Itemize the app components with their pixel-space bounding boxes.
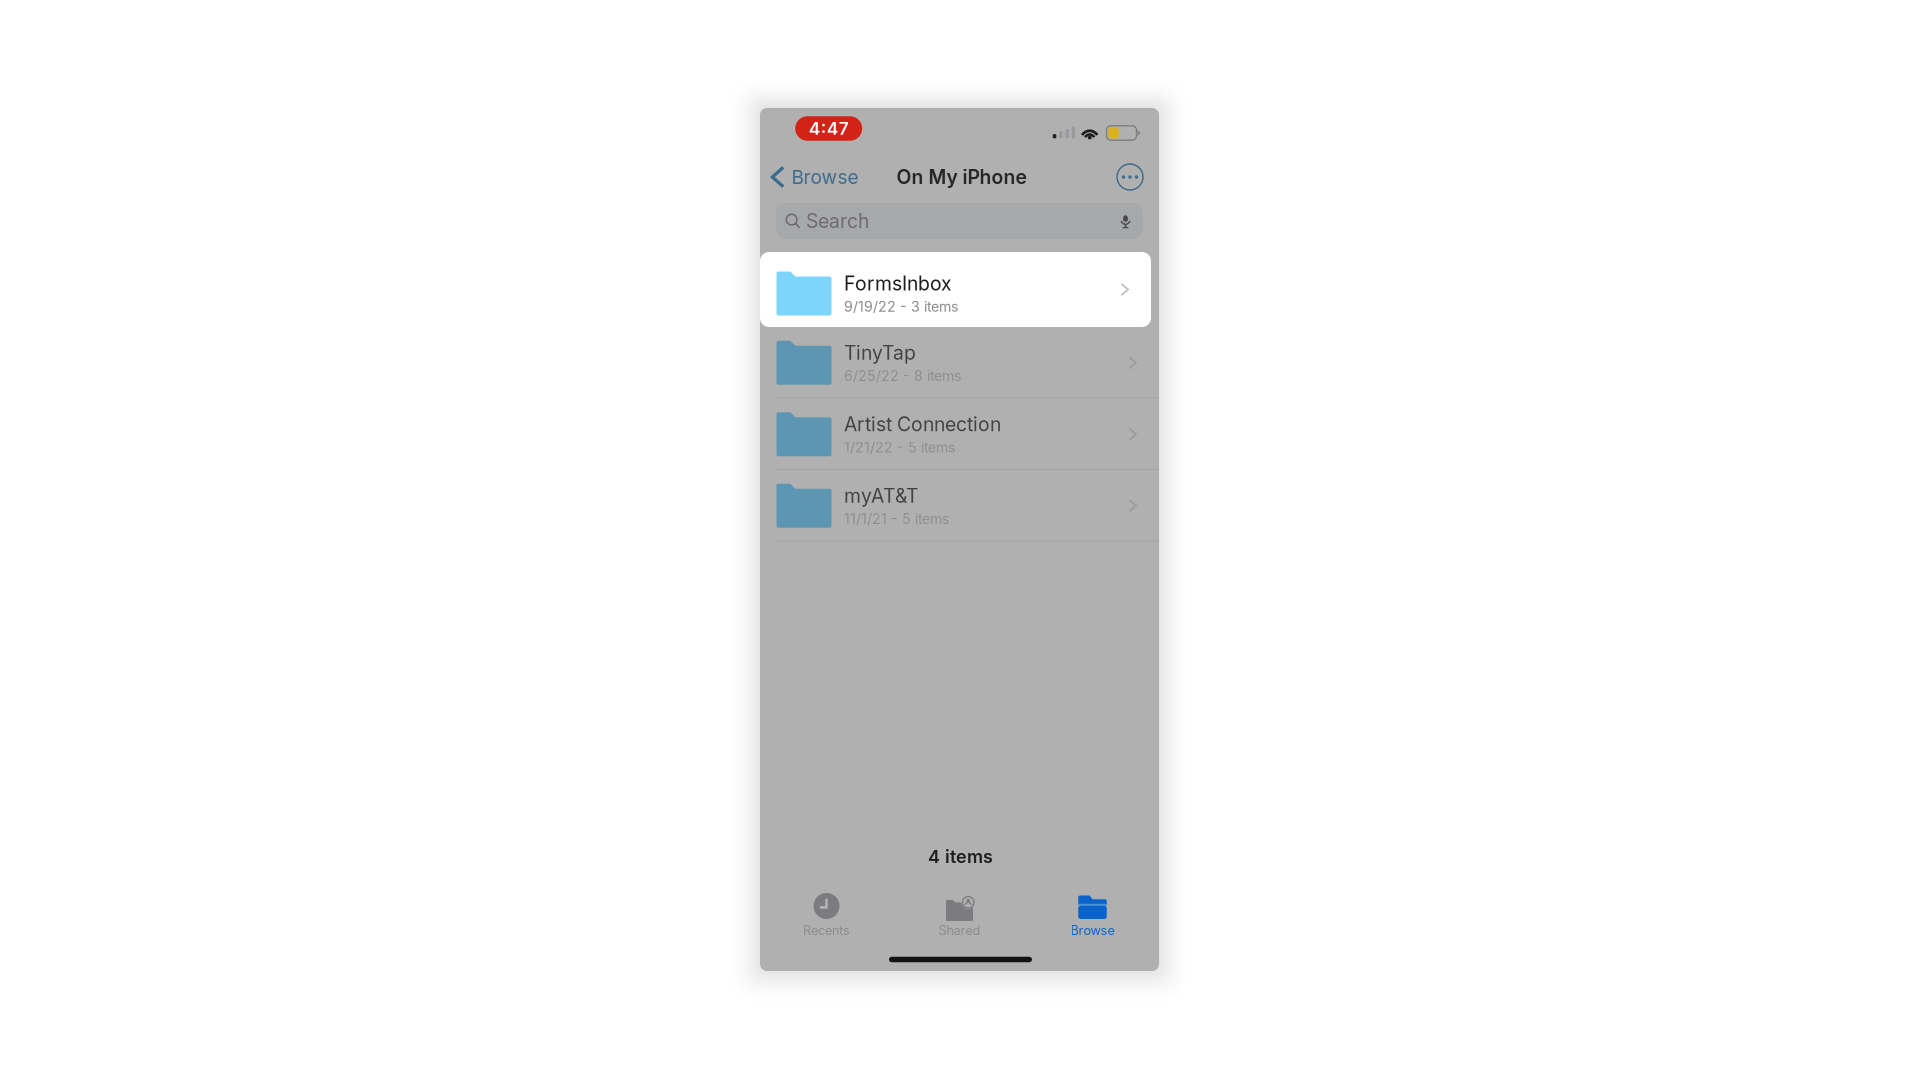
button[interactable]: myAT&T	[760, 470, 1159, 541]
staticText: Browse	[1070, 923, 1114, 938]
staticText: 4 items	[928, 846, 993, 867]
staticText: Artist Connection	[844, 413, 1001, 436]
staticText: 9/19/22 - 3 items	[844, 298, 958, 315]
staticText: 11/1/21 - 5 items	[844, 511, 949, 527]
button[interactable]: More options	[1108, 155, 1152, 199]
button[interactable]: Artist Connection	[760, 398, 1159, 470]
staticText: Recents	[803, 923, 850, 938]
staticText: FormsInbox	[844, 272, 952, 295]
staticText: 1/21/22 - 5 items	[844, 439, 955, 456]
button[interactable]: Browse	[1026, 890, 1159, 940]
staticText: TinyTap	[844, 341, 916, 364]
staticText: Shared	[938, 923, 980, 938]
button[interactable]: FormsInbox	[760, 252, 1151, 327]
staticText: myAT&T	[844, 484, 918, 507]
staticText: Browse	[792, 166, 859, 188]
button[interactable]: Browse	[761, 156, 867, 198]
button[interactable]: Recents	[760, 890, 893, 940]
staticText: 6/25/22 - 8 items	[844, 368, 961, 384]
staticText: On My iPhone	[896, 165, 1026, 188]
staticText: 4:47	[809, 118, 849, 139]
staticText: Search	[806, 209, 869, 232]
button[interactable]: TinyTap	[760, 327, 1159, 398]
button[interactable]: Shared	[893, 890, 1026, 940]
button[interactable]: Search	[776, 203, 1143, 239]
